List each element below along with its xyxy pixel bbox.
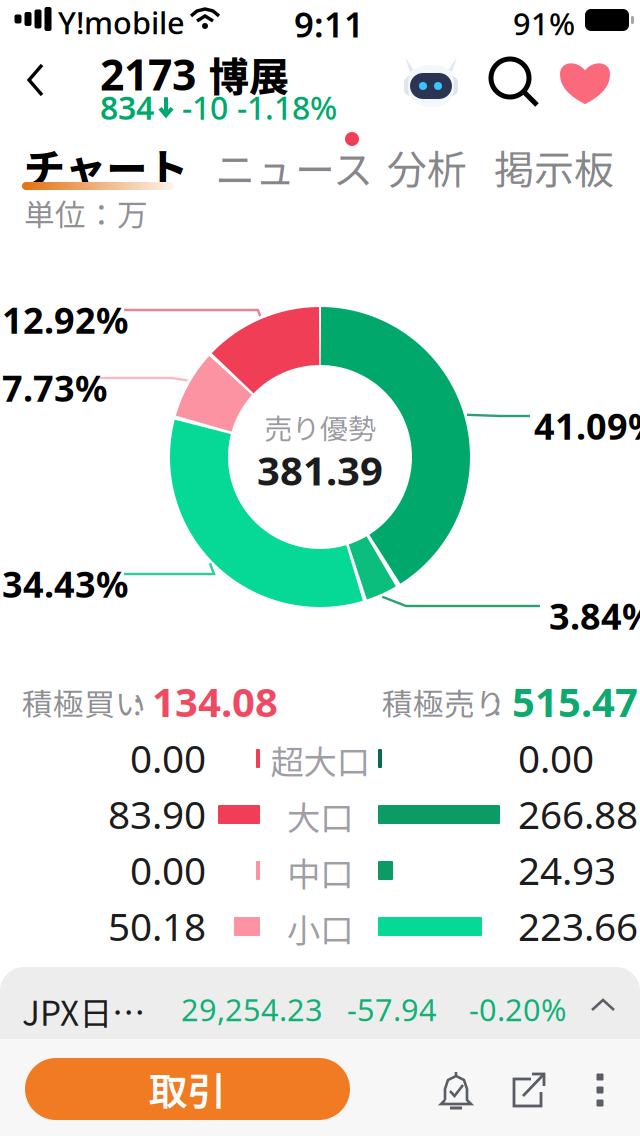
button[interactable]: 分析 [379, 124, 463, 190]
staticText: 29,254.23 [181, 989, 323, 1030]
staticText: : [133, 680, 142, 724]
staticText: 単位：万 [24, 191, 148, 235]
staticText: 博展 [209, 45, 289, 103]
staticText: ニュース [215, 138, 373, 196]
staticText: 7.73% [2, 364, 107, 412]
staticText: 34.43% [2, 560, 128, 608]
staticText: 掲示板 [494, 138, 614, 196]
staticText: 834 [100, 86, 154, 128]
staticText: 分析 [387, 138, 467, 196]
staticText: 0.00 [130, 844, 206, 896]
staticText: 50.18 [108, 900, 206, 952]
staticText: 83.90 [108, 788, 206, 840]
staticText: 9:11 [294, 1, 364, 47]
staticText: 134.08 [152, 675, 278, 728]
staticText: 381.39 [257, 443, 383, 496]
staticText: -1.18% [237, 86, 337, 128]
staticText: 積極買い [22, 680, 146, 724]
button[interactable]: Back [4, 44, 66, 116]
button[interactable]: AI assistant [396, 48, 466, 118]
staticText: 223.66 [518, 900, 638, 952]
staticText: 取引 [148, 1061, 226, 1117]
button[interactable]: ニュース [207, 124, 359, 190]
button[interactable]: Favorite [552, 50, 618, 116]
staticText: 超大口 [270, 736, 369, 784]
staticText: 0.00 [130, 732, 206, 784]
staticText: 515.47 [512, 675, 638, 728]
staticText: 24.93 [518, 844, 616, 896]
staticText: : [493, 680, 502, 724]
button[interactable]: 取引 [25, 1058, 350, 1120]
staticText: 積極売り [382, 680, 506, 724]
staticText: 0.00 [518, 732, 594, 784]
button[interactable]: チャート [16, 124, 192, 190]
staticText: 2173 [100, 46, 196, 102]
staticText: -57.94 [347, 989, 437, 1030]
staticText: 売り優勢 [264, 407, 376, 447]
staticText: 266.88 [518, 788, 638, 840]
button[interactable]: 掲示板 [486, 124, 604, 190]
staticText: チャート [24, 136, 188, 196]
button[interactable]: Alerts [428, 1066, 484, 1114]
staticText: 小口 [287, 904, 353, 952]
staticText: JPX日… [22, 987, 145, 1035]
button[interactable]: Share [500, 1066, 556, 1114]
staticText: 41.09% [534, 402, 640, 450]
staticText: 大口 [287, 792, 353, 840]
button[interactable]: JPX日… [0, 967, 640, 1039]
staticText: -0.20% [469, 989, 566, 1030]
staticText: Y!mobile [58, 2, 185, 43]
button[interactable]: Search [482, 50, 548, 116]
staticText: -10 [182, 86, 228, 128]
staticText: 3.84% [549, 592, 640, 640]
staticText: 12.92% [2, 296, 128, 344]
staticText: 91% [513, 3, 575, 44]
staticText: 中口 [287, 848, 353, 896]
button[interactable]: More options [580, 1066, 620, 1114]
